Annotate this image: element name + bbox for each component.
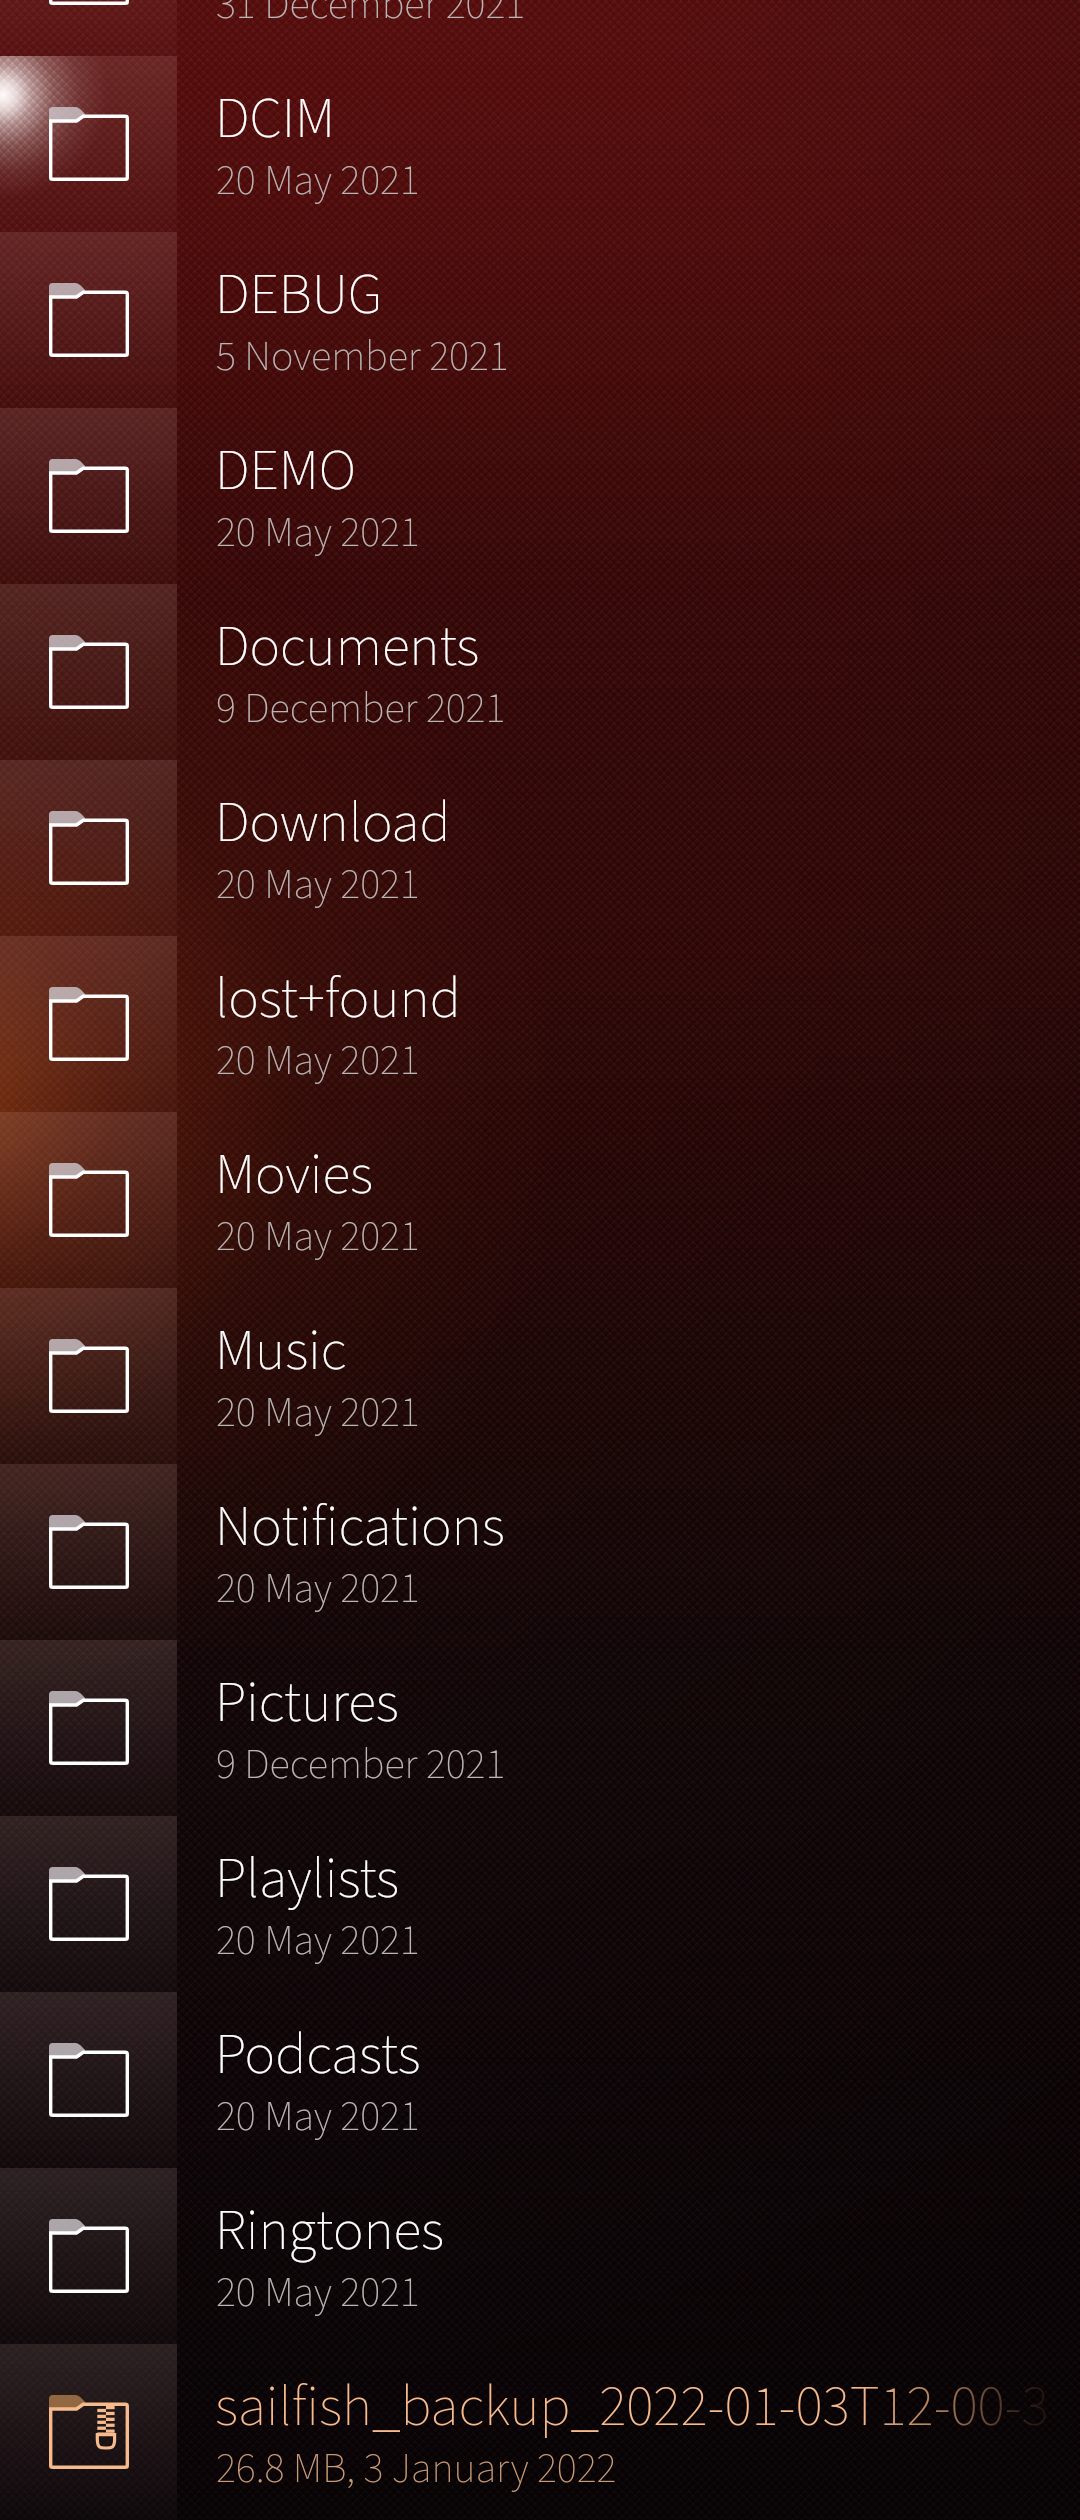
button[interactable]: Music [0,1288,1080,1464]
staticText: Pictures [215,1662,399,1744]
button[interactable]: DEBUG [0,232,1080,408]
staticText: DEBUG [215,254,383,336]
button[interactable]: Ringtones [0,2168,1080,2344]
button[interactable]: Movies [0,1112,1080,1288]
staticText: Music [215,1310,347,1392]
staticText: Podcasts [215,2014,421,2096]
staticText: 20 May 2021 [216,855,420,915]
staticText: 9 December 2021 [216,1735,506,1795]
staticText: DCIM [215,78,336,160]
staticText: 20 May 2021 [216,2087,420,2147]
staticText: Movies [215,1134,373,1216]
staticText: Notifications [215,1486,505,1568]
button[interactable]: lost+found [0,936,1080,1112]
button[interactable]: Android [0,0,1080,56]
button[interactable]: DEMO [0,408,1080,584]
button[interactable]: sailfish_backup_2022-01-03T12-00-3 [0,2344,1080,2520]
staticText: DEMO [215,430,356,512]
button[interactable]: Documents [0,584,1080,760]
staticText: 20 May 2021 [216,1031,420,1091]
staticText: 20 May 2021 [216,1911,420,1971]
staticText: 20 May 2021 [216,151,420,211]
button[interactable]: Podcasts [0,1992,1080,2168]
button[interactable]: Download [0,760,1080,936]
staticText: Playlists [215,1838,399,1920]
button[interactable]: Notifications [0,1464,1080,1640]
staticText: sailfish_backup_2022-01-03T12-00-3 [215,2366,1049,2448]
staticText: 20 May 2021 [216,1383,420,1443]
staticText: lost+found [215,958,461,1040]
staticText: 31 December 2021 [216,0,526,35]
button[interactable]: Playlists [0,1816,1080,1992]
staticText: Ringtones [215,2190,444,2272]
staticText: 20 May 2021 [216,503,420,563]
staticText: 5 November 2021 [216,327,509,387]
staticText: 20 May 2021 [216,2263,420,2323]
staticText: 20 May 2021 [216,1559,420,1619]
staticText: 26.8 MB, 3 January 2022 [216,2439,617,2499]
staticText: Download [215,782,451,864]
button[interactable]: Pictures [0,1640,1080,1816]
staticText: Documents [215,606,480,688]
staticText: 20 May 2021 [216,1207,420,1267]
button[interactable]: DCIM [0,56,1080,232]
staticText: 9 December 2021 [216,679,506,739]
